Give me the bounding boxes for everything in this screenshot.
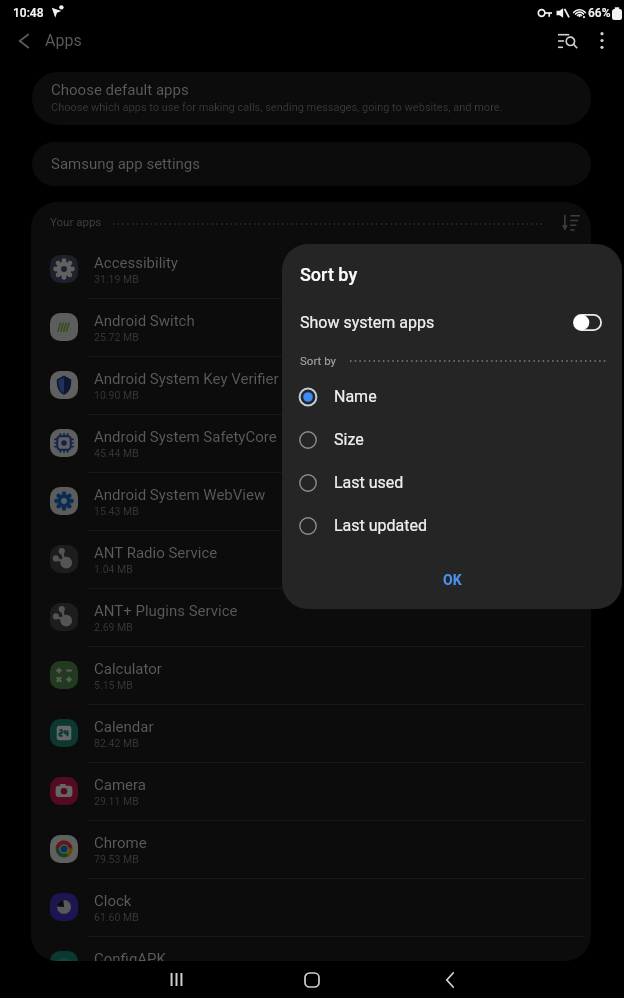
button[interactable]: Samsung app settings xyxy=(32,142,591,186)
button[interactable]: Camera xyxy=(31,762,591,820)
staticText: Sort by xyxy=(300,354,337,367)
button[interactable]: Show system apps xyxy=(282,300,622,344)
staticText: 15.43 MB xyxy=(94,505,139,517)
staticText: Name xyxy=(334,387,377,406)
button[interactable]: Last used xyxy=(282,461,622,504)
staticText: Android System WebView xyxy=(94,486,266,504)
button[interactable]: Name xyxy=(282,375,622,418)
staticText: Samsung app settings xyxy=(51,155,200,173)
button[interactable]: Choose default apps xyxy=(32,72,591,125)
staticText: Your apps xyxy=(50,215,102,228)
staticText: 25.72 MB xyxy=(94,331,139,343)
button[interactable]: Android System WebView xyxy=(31,472,591,530)
button[interactable]: Recent apps xyxy=(152,961,200,998)
staticText: Last used xyxy=(334,473,404,492)
staticText: Size xyxy=(334,430,364,449)
staticText: Android System Key Verifier xyxy=(94,370,279,388)
button[interactable]: Chrome xyxy=(31,820,591,878)
staticText: 31.19 MB xyxy=(94,273,139,285)
button[interactable]: Calendar xyxy=(31,704,591,762)
staticText: Choose default apps xyxy=(51,81,189,99)
button[interactable]: Back xyxy=(426,961,474,998)
button[interactable]: Accessibility xyxy=(31,240,591,298)
button[interactable]: Clock xyxy=(31,878,591,936)
button[interactable]: Last updated xyxy=(282,504,622,547)
button[interactable]: Navigate up xyxy=(5,22,42,59)
staticText: Android System SafetyCore xyxy=(94,428,277,446)
button[interactable]: Android System Key Verifier xyxy=(31,356,591,414)
button[interactable]: OK xyxy=(417,566,488,594)
staticText: 2.69 MB xyxy=(94,621,133,633)
staticText: 45.44 MB xyxy=(94,447,139,459)
staticText: 1.04 MB xyxy=(94,563,133,575)
staticText: OK xyxy=(443,572,462,588)
button[interactable]: Android Switch xyxy=(31,298,591,356)
staticText: 61.60 MB xyxy=(94,911,139,923)
staticText: 79.53 MB xyxy=(94,853,139,865)
staticText: ANT Radio Service xyxy=(94,544,218,562)
staticText: Apps xyxy=(45,31,82,50)
staticText: Clock xyxy=(94,892,132,910)
staticText: Show system apps xyxy=(300,313,435,332)
staticText: ConfigAPK xyxy=(94,950,166,961)
button[interactable]: Android System SafetyCore xyxy=(31,414,591,472)
staticText: Camera xyxy=(94,776,146,794)
button[interactable]: Calculator xyxy=(31,646,591,704)
staticText: Android Switch xyxy=(94,312,195,330)
staticText: ANT+ Plugins Service xyxy=(94,602,238,620)
button[interactable]: More options xyxy=(584,22,620,58)
staticText: Accessibility xyxy=(94,254,178,272)
staticText: Calendar xyxy=(94,718,154,736)
staticText: Last updated xyxy=(334,516,428,535)
button[interactable]: Size xyxy=(282,418,622,461)
button[interactable]: ConfigAPK xyxy=(31,936,591,961)
button[interactable]: Search xyxy=(549,22,587,60)
staticText: Chrome xyxy=(94,834,147,852)
button[interactable]: Sort order xyxy=(557,208,585,236)
staticText: 66% xyxy=(588,6,611,20)
button[interactable]: ANT Radio Service xyxy=(31,530,591,588)
staticText: 82.42 MB xyxy=(94,737,139,749)
button[interactable]: Home xyxy=(288,961,336,998)
staticText: 10.90 MB xyxy=(94,389,139,401)
staticText: Calculator xyxy=(94,660,162,678)
staticText: 10:48 xyxy=(13,6,44,20)
staticText: 29.11 MB xyxy=(94,795,139,807)
staticText: Choose which apps to use for making call… xyxy=(51,101,503,114)
staticText: Sort by xyxy=(300,264,358,285)
button[interactable]: ANT+ Plugins Service xyxy=(31,588,591,646)
staticText: 5.15 MB xyxy=(94,679,133,691)
